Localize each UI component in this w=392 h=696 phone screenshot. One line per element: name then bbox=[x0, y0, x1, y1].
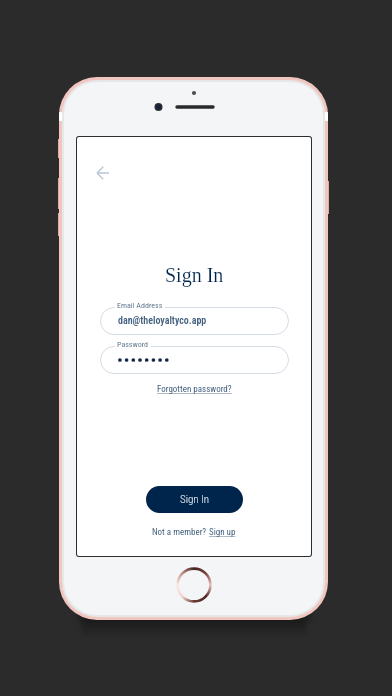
button[interactable]: Password bbox=[100, 346, 289, 374]
button[interactable]: Forgotten password? bbox=[157, 384, 232, 395]
staticText: Password bbox=[117, 340, 149, 349]
staticText: Sign In bbox=[180, 493, 210, 506]
button[interactable]: Sign up bbox=[209, 527, 236, 538]
staticText: Sign In bbox=[165, 264, 224, 286]
button[interactable]: Back bbox=[88, 158, 118, 188]
button[interactable]: Email Address bbox=[100, 307, 289, 335]
staticText: dan@theloyaltyco.app bbox=[118, 315, 207, 327]
staticText: Email Address bbox=[117, 301, 163, 310]
staticText: Not a member? bbox=[152, 527, 209, 538]
button[interactable]: Sign In bbox=[146, 486, 243, 513]
